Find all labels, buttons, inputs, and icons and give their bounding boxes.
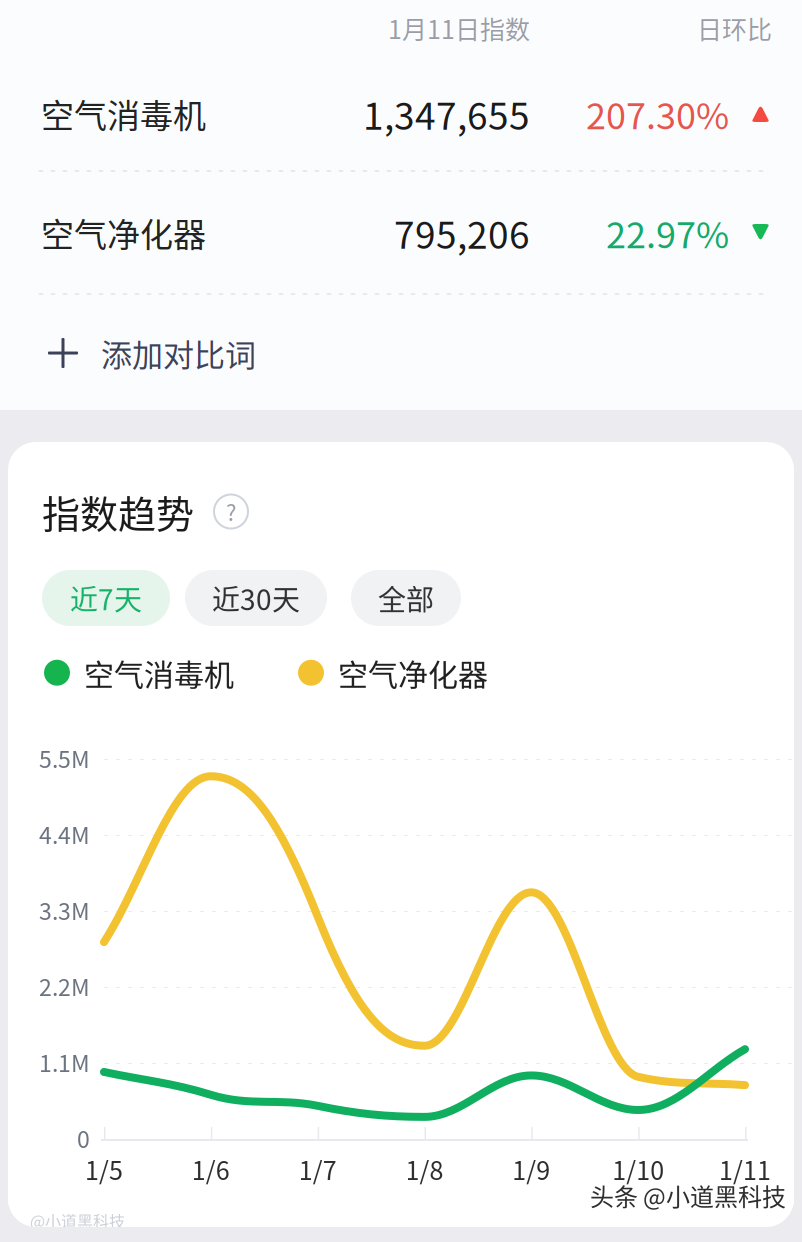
staticText: 指数趋势 [42,484,194,539]
staticText: 1/10 [612,1151,664,1187]
button[interactable]: 全部 [351,570,461,626]
staticText: 0 [77,1121,90,1155]
staticText: 1.1M [39,1045,90,1079]
staticText: @小道黑科技 [30,1209,125,1232]
staticText: 22.97% [606,206,729,258]
staticText: 空气净化器 [338,651,488,694]
staticText: 近7天 [70,578,142,618]
staticText: 1/5 [85,1151,123,1187]
staticText: 空气消毒机 [84,651,234,694]
staticText: 1月11日指数 [388,10,530,46]
staticText: 3.3M [39,893,90,927]
button[interactable]: 空气消毒机 [0,57,802,170]
staticText: ? [226,496,236,527]
staticText: 全部 [378,578,434,618]
button[interactable]: 近30天 [185,570,327,626]
staticText: 添加对比词 [101,331,256,375]
staticText: 近30天 [212,578,300,618]
staticText: 日环比 [697,10,772,46]
staticText: 1/8 [405,1151,443,1187]
staticText: 1/11 [719,1151,771,1187]
staticText: 头条 @小道黑科技 [590,1178,786,1213]
button[interactable]: 近7天 [42,570,170,626]
staticText: 5.5M [39,741,90,775]
staticText: 2.2M [39,969,90,1003]
staticText: 空气净化器 [41,209,206,256]
button[interactable]: 添加对比词 [0,295,802,411]
staticText: 1/6 [192,1151,230,1187]
staticText: 207.30% [586,87,729,139]
staticText: 795,206 [394,206,530,259]
staticText: 1/9 [512,1151,550,1187]
staticText: 空气消毒机 [41,90,206,137]
button[interactable]: About the index trend [214,494,248,528]
staticText: 1/7 [299,1151,337,1187]
button[interactable]: 空气净化器 [0,172,802,293]
staticText: 1,347,655 [363,87,530,140]
staticText: 4.4M [39,817,90,851]
